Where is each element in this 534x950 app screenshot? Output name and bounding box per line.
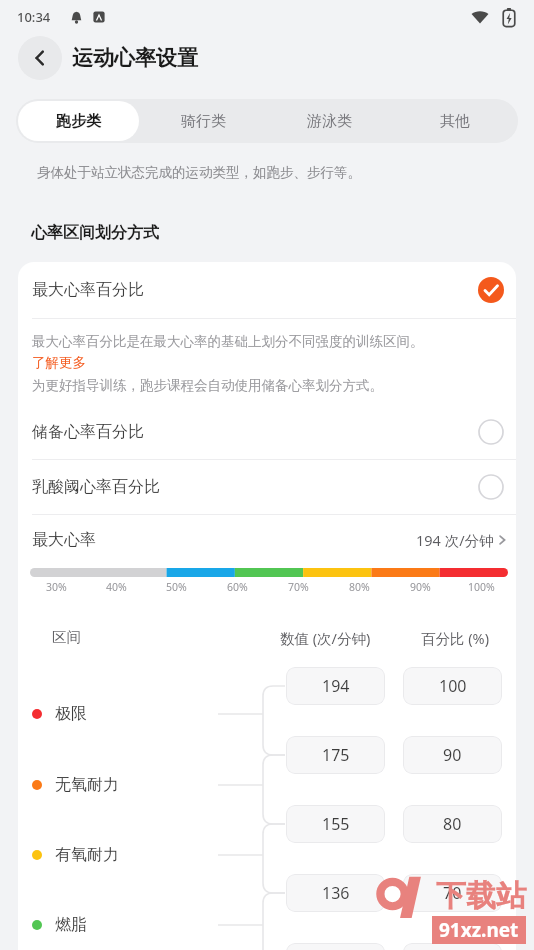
button[interactable]: 175 (286, 736, 385, 774)
staticText: 下载站 (436, 877, 526, 915)
staticText: 百分比 (%) (421, 628, 490, 648)
staticText: 了解更多 (32, 354, 86, 371)
staticText: 90 (443, 744, 462, 766)
staticText: 最大心率百分比是在最大心率的基础上划分不同强度的训练区间。 (32, 333, 424, 350)
staticText: 燃脂 (55, 915, 87, 935)
button[interactable]: 60 (403, 943, 502, 950)
staticText: 乳酸阈心率百分比 (32, 477, 160, 497)
button[interactable]: 有氧耐力 (32, 841, 119, 869)
button[interactable]: 乳酸阈心率百分比 (18, 460, 516, 514)
button[interactable]: 储备心率百分比 (18, 405, 516, 459)
button[interactable]: 无氧耐力 (32, 771, 119, 799)
button[interactable]: 骑行类 (143, 101, 264, 141)
staticText: 最大心率百分比 (32, 280, 144, 300)
button[interactable]: 了解更多 (32, 354, 86, 371)
staticText: 100% (468, 580, 495, 594)
staticText: 10:34 (17, 8, 51, 26)
staticText: 80% (349, 580, 370, 594)
button[interactable]: 117 (286, 943, 385, 950)
staticText: 无氧耐力 (55, 775, 119, 795)
staticText: 心率区间划分方式 (31, 223, 159, 243)
button[interactable]: 90 (403, 736, 502, 774)
staticText: 运动心率设置 (72, 45, 198, 71)
staticText: 40% (106, 580, 127, 594)
button[interactable]: 游泳类 (268, 101, 390, 141)
staticText: 区间 (52, 628, 81, 646)
staticText: 194 (322, 675, 350, 697)
staticText: 有氧耐力 (55, 845, 119, 865)
button[interactable]: 70 (403, 874, 502, 912)
staticText: 身体处于站立状态完成的运动类型，如跑步、步行等。 (37, 164, 361, 181)
staticText: 136 (322, 882, 350, 904)
staticText: 70 (443, 882, 462, 904)
staticText: 游泳类 (307, 112, 352, 131)
staticText: 70% (288, 580, 309, 594)
button[interactable]: 136 (286, 874, 385, 912)
button[interactable]: 155 (286, 805, 385, 843)
staticText: 为更好指导训练，跑步课程会自动使用储备心率划分方式。 (32, 377, 383, 394)
staticText: 30% (46, 580, 67, 594)
staticText: 175 (322, 744, 350, 766)
staticText: 155 (322, 813, 350, 835)
staticText: 其他 (440, 112, 470, 131)
staticText: 100 (439, 675, 467, 697)
button[interactable]: 最大心率 (18, 515, 516, 564)
button[interactable]: 极限 (32, 700, 87, 728)
staticText: 最大心率 (32, 530, 96, 550)
staticText: 数值 (次/分钟) (280, 628, 371, 648)
button[interactable]: 100 (403, 667, 502, 705)
staticText: 骑行类 (181, 112, 226, 131)
staticText: 90% (410, 580, 431, 594)
staticText: 极限 (55, 704, 87, 724)
button[interactable]: 燃脂 (32, 911, 87, 939)
button[interactable]: Back (18, 36, 62, 80)
staticText: 50% (166, 580, 187, 594)
button[interactable]: 最大心率百分比 (18, 262, 516, 318)
staticText: 91xz.net (439, 917, 519, 943)
staticText: 80 (443, 813, 462, 835)
button[interactable]: 跑步类 (18, 101, 139, 141)
button[interactable]: 80 (403, 805, 502, 843)
staticText: 194 次/分钟 (416, 530, 494, 550)
staticText: 60% (227, 580, 248, 594)
button[interactable]: 194 (286, 667, 385, 705)
button[interactable]: 其他 (394, 101, 516, 141)
staticText: 储备心率百分比 (32, 422, 144, 442)
staticText: 跑步类 (56, 112, 101, 131)
